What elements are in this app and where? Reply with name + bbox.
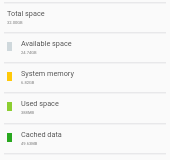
button[interactable]: Used space xyxy=(0,93,170,123)
staticText: 49.63MB xyxy=(21,141,38,146)
staticText: 6.82GB xyxy=(21,80,35,85)
button[interactable]: Total space xyxy=(0,3,170,33)
staticText: System memory xyxy=(21,69,74,78)
staticText: Used space xyxy=(21,99,59,108)
button[interactable]: Available space xyxy=(0,33,170,63)
button[interactable]: System memory xyxy=(0,63,170,93)
staticText: 388MB xyxy=(21,110,35,115)
staticText: Available space xyxy=(21,39,72,48)
staticText: 24.74GB xyxy=(21,50,37,55)
staticText: 32.00GB xyxy=(7,20,23,25)
button[interactable]: Cached data xyxy=(0,124,170,154)
staticText: Total space xyxy=(7,9,45,18)
staticText: Cached data xyxy=(21,130,62,139)
